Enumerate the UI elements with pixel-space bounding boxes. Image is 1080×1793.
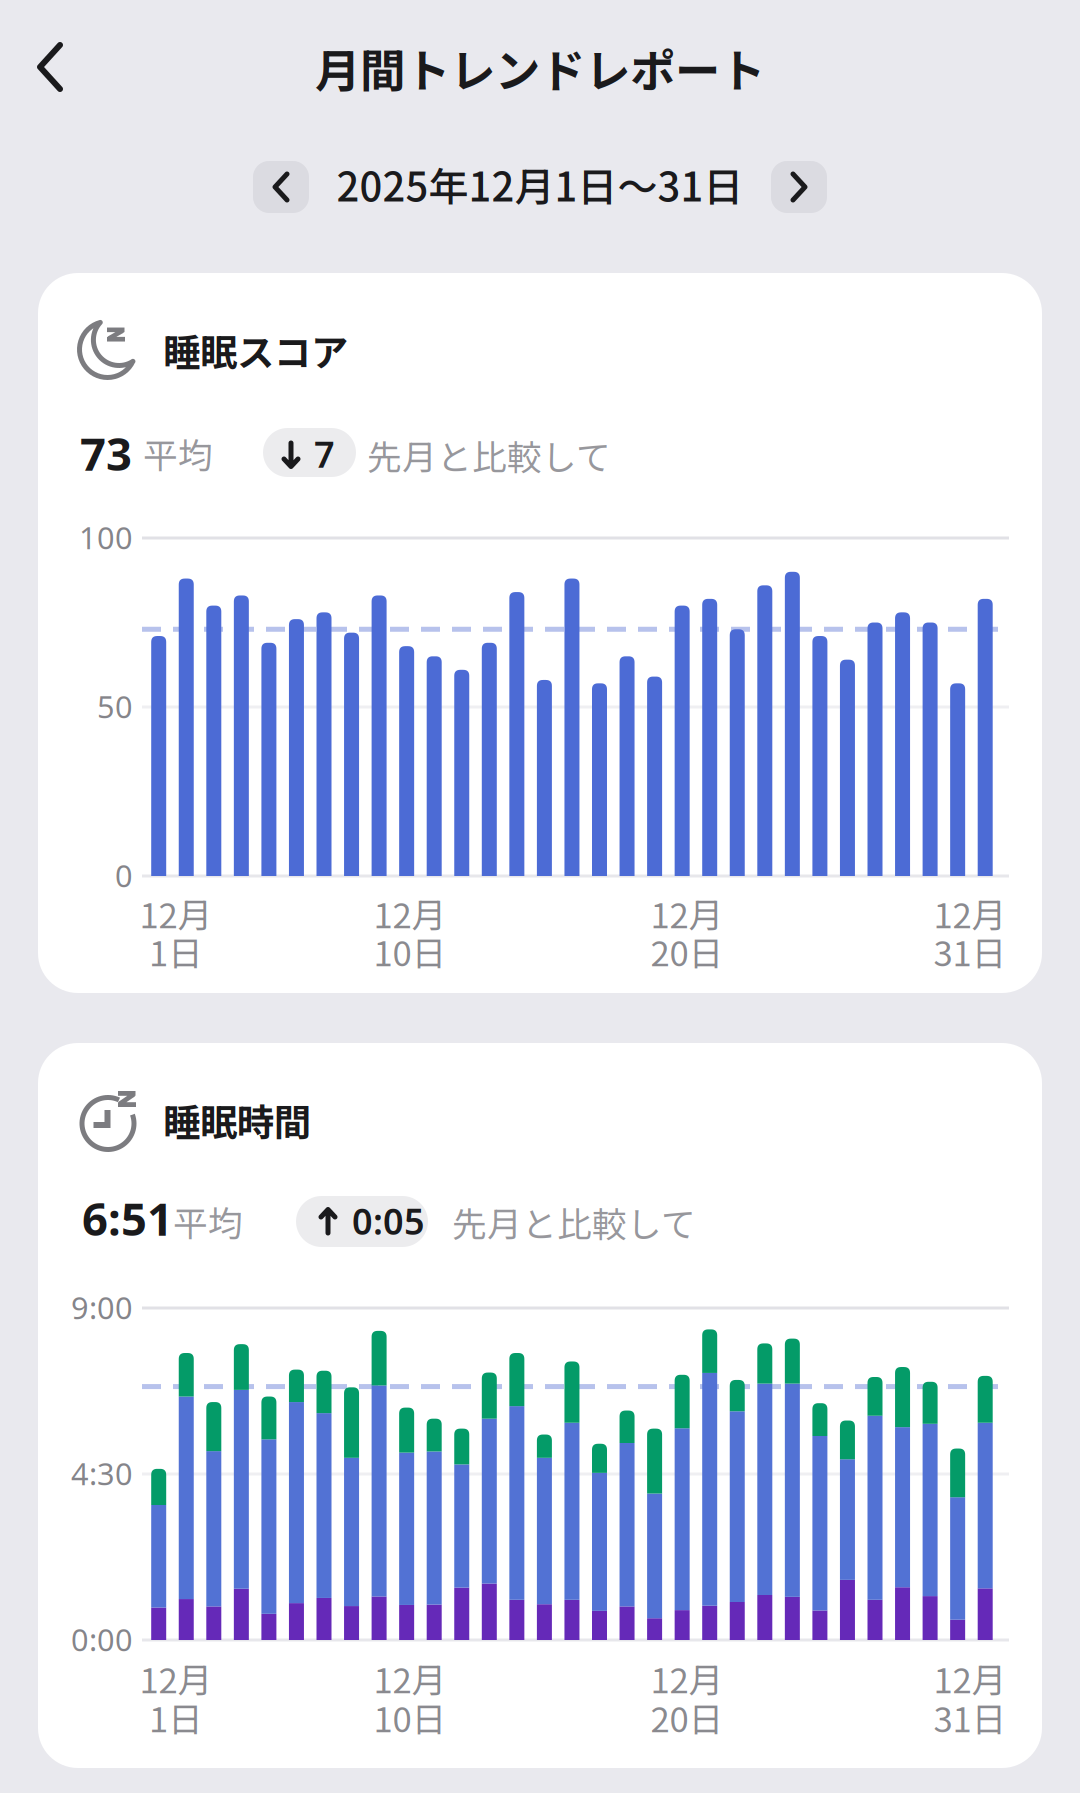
staticText: 0:05 (352, 1197, 425, 1245)
staticText: 0 (115, 855, 133, 896)
staticText: 睡眠時間 (163, 1093, 311, 1147)
button[interactable]: Previous month (253, 161, 309, 213)
staticText: 12月 (933, 1653, 1006, 1703)
staticText: 10日 (373, 926, 446, 976)
staticText: 1日 (149, 1692, 203, 1742)
staticText: 睡眠スコア (163, 323, 348, 377)
staticText: 12月 (373, 1653, 446, 1703)
staticText: 20日 (650, 1692, 723, 1742)
staticText: 73 (80, 423, 132, 483)
staticText: 平均 (173, 1196, 243, 1246)
staticText: 7 (314, 430, 335, 478)
staticText: 月間トレンドレポート (315, 35, 765, 101)
staticText: 平均 (143, 428, 213, 478)
staticText: 先月と比較して (452, 1197, 696, 1247)
staticText: 20日 (650, 926, 723, 976)
staticText: 先月と比較して (367, 430, 611, 480)
button[interactable]: Next month (771, 161, 827, 213)
staticText: 4:30 (71, 1453, 133, 1494)
staticText: 31日 (933, 926, 1006, 976)
staticText: 9:00 (71, 1287, 133, 1328)
staticText: 0:00 (71, 1619, 133, 1660)
staticText: 100 (79, 517, 133, 558)
staticText: 6:51 (82, 1188, 173, 1248)
staticText: 2025年12月1日〜31日 (336, 155, 743, 213)
button[interactable]: Back (25, 30, 75, 104)
staticText: 12月 (933, 888, 1006, 938)
staticText: 12月 (650, 1653, 723, 1703)
staticText: 12月 (139, 1653, 212, 1703)
staticText: 12月 (139, 888, 212, 938)
staticText: 12月 (373, 888, 446, 938)
staticText: 12月 (650, 888, 723, 938)
staticText: 50 (97, 686, 133, 727)
staticText: 31日 (933, 1692, 1006, 1742)
staticText: 10日 (373, 1692, 446, 1742)
staticText: 1日 (149, 926, 203, 976)
